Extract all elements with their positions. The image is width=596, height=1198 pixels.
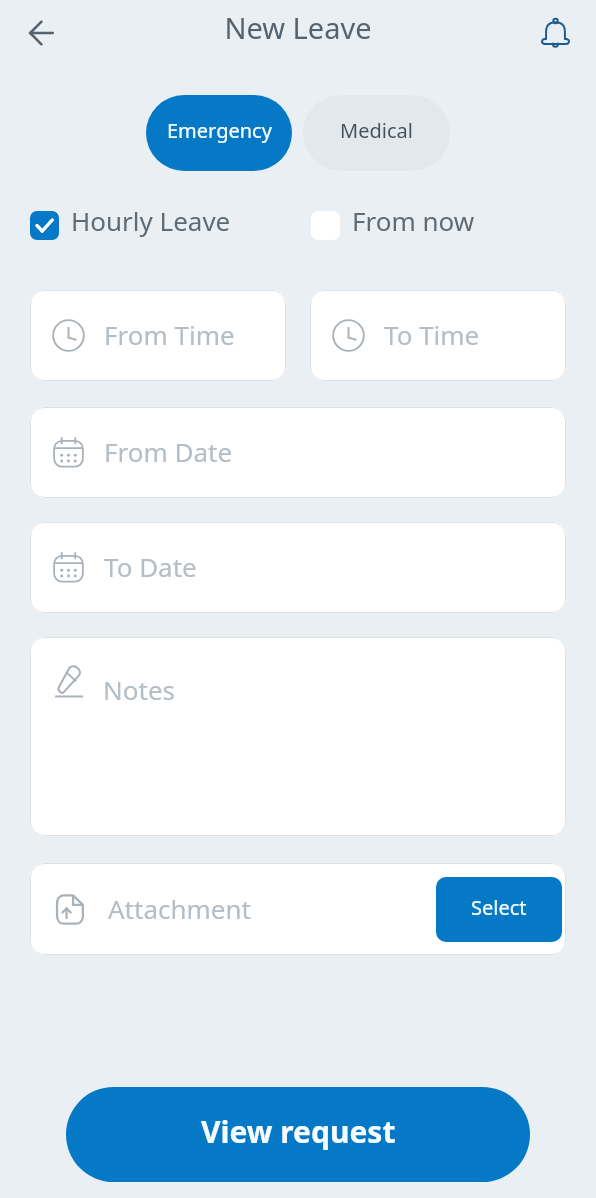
staticText: Hourly Leave [71, 203, 231, 238]
button[interactable]: Notifications [531, 9, 579, 57]
staticText: View request [201, 1111, 396, 1152]
button[interactable]: From now [311, 208, 472, 243]
button[interactable]: From Time [30, 290, 286, 381]
staticText: Emergency [167, 117, 272, 144]
staticText: Attachment [108, 891, 251, 926]
staticText: From now [352, 203, 475, 238]
staticText: Select [471, 894, 527, 921]
staticText: From Date [104, 434, 233, 469]
button[interactable]: To Time [310, 290, 566, 381]
button[interactable]: Back [16, 9, 66, 56]
button[interactable]: Emergency [146, 95, 292, 171]
staticText: From Time [104, 317, 235, 352]
button[interactable]: Hourly Leave [30, 208, 228, 243]
button[interactable]: Medical [303, 95, 450, 171]
staticText: Notes [103, 672, 175, 707]
button[interactable]: Notes [30, 637, 566, 836]
staticText: New Leave [0, 8, 596, 47]
button[interactable]: To Date [30, 522, 566, 613]
button[interactable]: Select [436, 877, 562, 942]
button[interactable]: From Date [30, 407, 566, 498]
button[interactable]: View request [66, 1087, 530, 1182]
staticText: To Time [384, 317, 480, 352]
staticText: Medical [340, 117, 413, 144]
staticText: To Date [104, 549, 197, 584]
